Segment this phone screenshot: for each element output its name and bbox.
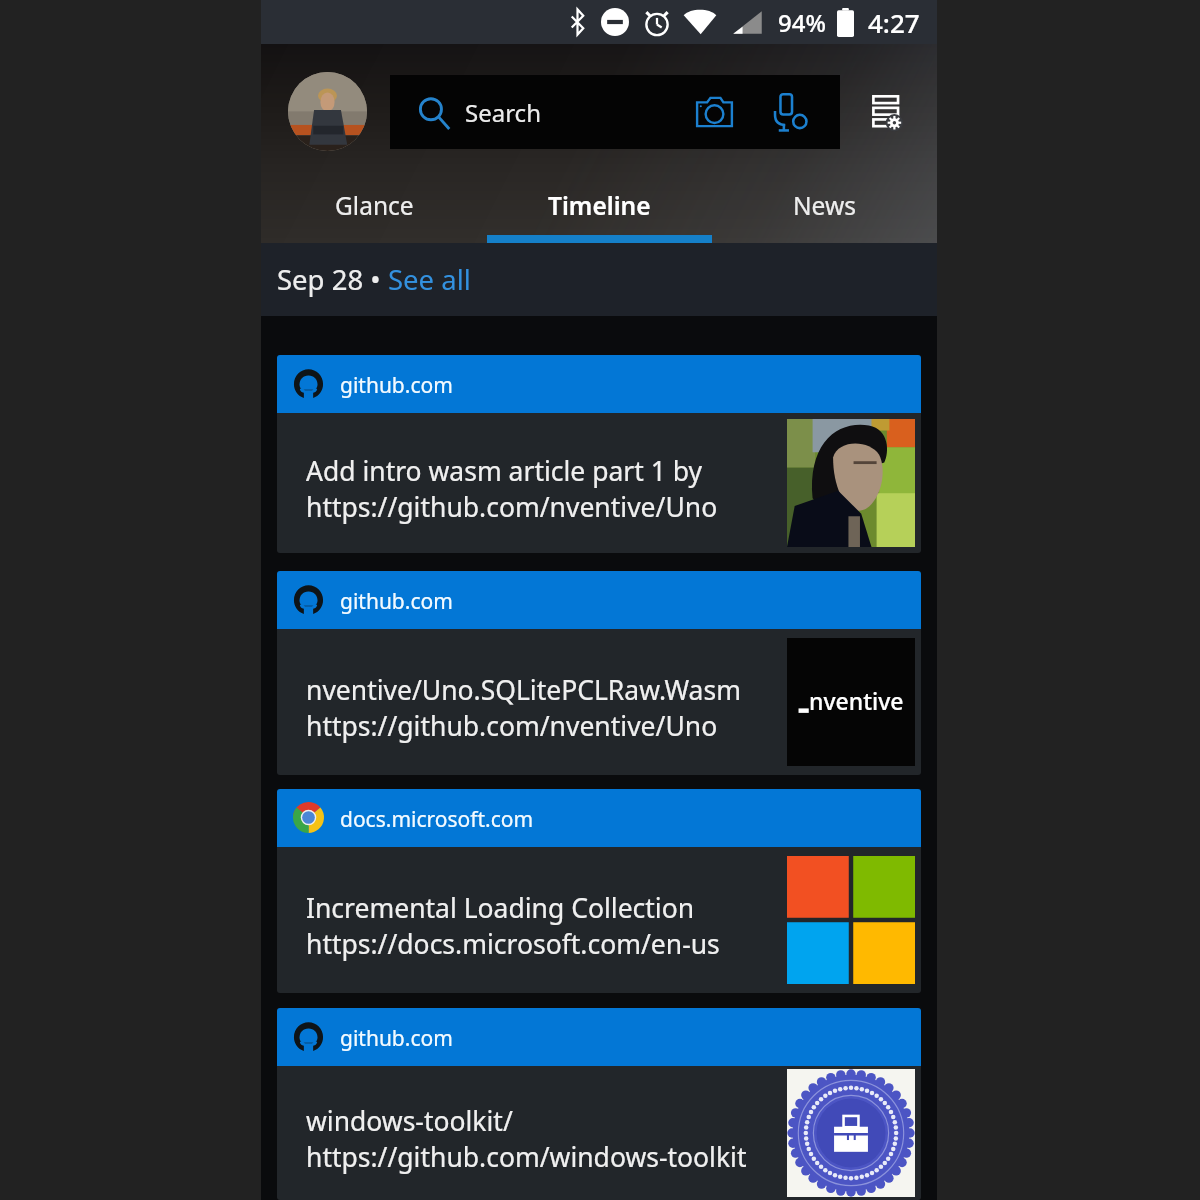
staticText: Search [465,96,541,129]
button[interactable]: Search by image [685,83,743,141]
button[interactable]: Glance [261,181,487,243]
staticText: https://github.com/windows-toolkit [306,1139,747,1175]
button[interactable]: github.com [277,355,921,553]
staticText: Incremental Loading Collection [306,890,695,926]
staticText: https://github.com/nventive/Uno [306,708,718,744]
staticText: Glance [335,189,414,222]
button[interactable]: github.com [277,1008,921,1200]
staticText: windows-toolkit/ [306,1103,513,1139]
staticText: 4:27 [868,5,920,40]
staticText: Timeline [548,189,651,222]
staticText: https://github.com/nventive/Uno [306,489,718,525]
staticText: https://docs.microsoft.com/en-us [306,926,720,962]
button[interactable]: News [712,181,937,243]
button[interactable]: github.com [277,571,921,775]
staticText: github.com [340,371,453,400]
button[interactable]: Timeline [487,181,712,243]
staticText: nventive/Uno.SQLitePCLRaw.Wasm [306,672,741,708]
staticText: News [793,189,856,222]
staticText: github.com [340,587,453,616]
staticText: github.com [340,1024,453,1053]
button[interactable]: Search [390,75,840,149]
button[interactable]: docs.microsoft.com [277,789,921,993]
staticText: docs.microsoft.com [340,805,534,834]
button[interactable]: Profile [288,72,367,151]
staticText: nventive [809,685,904,716]
staticText: Add intro wasm article part 1 by [306,453,703,489]
button[interactable]: See all [388,261,471,298]
staticText: See all [388,261,471,298]
staticText: 94% [778,6,826,39]
button[interactable]: Voice search [765,86,817,138]
staticText: Sep 28 • [277,261,388,298]
button[interactable]: Customize feed [861,86,911,136]
